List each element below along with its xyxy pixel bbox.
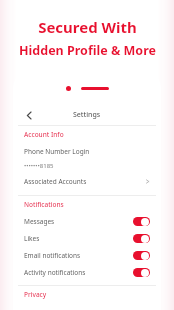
button[interactable]: Toggle on (133, 268, 150, 277)
staticText: Associated Accounts (24, 177, 87, 186)
button[interactable]: Toggle on (133, 234, 150, 243)
staticText: •••••••8185 (24, 162, 54, 170)
staticText: Privacy (24, 290, 47, 299)
button[interactable]: Activity notifications (18, 264, 156, 281)
staticText: Hidden Profile & More (19, 42, 156, 59)
staticText: Settings (73, 110, 101, 120)
staticText: Likes (24, 234, 40, 243)
button[interactable]: Associated Accounts (18, 173, 156, 189)
button[interactable]: Phone Number Login (18, 143, 156, 159)
button[interactable]: Back (21, 107, 37, 123)
button[interactable]: Toggle on (133, 251, 150, 260)
staticText: Activity notifications (24, 268, 86, 277)
staticText: Secured With (38, 17, 137, 37)
staticText: Notifications (24, 200, 64, 209)
button[interactable]: Toggle on (133, 217, 150, 226)
button[interactable]: Likes (18, 230, 156, 247)
staticText: Messages (24, 217, 55, 226)
staticText: Account Info (24, 130, 64, 139)
button[interactable]: Messages (18, 213, 156, 230)
staticText: Email notifications (24, 251, 81, 260)
button[interactable]: Email notifications (18, 247, 156, 264)
staticText: Phone Number Login (24, 147, 90, 156)
